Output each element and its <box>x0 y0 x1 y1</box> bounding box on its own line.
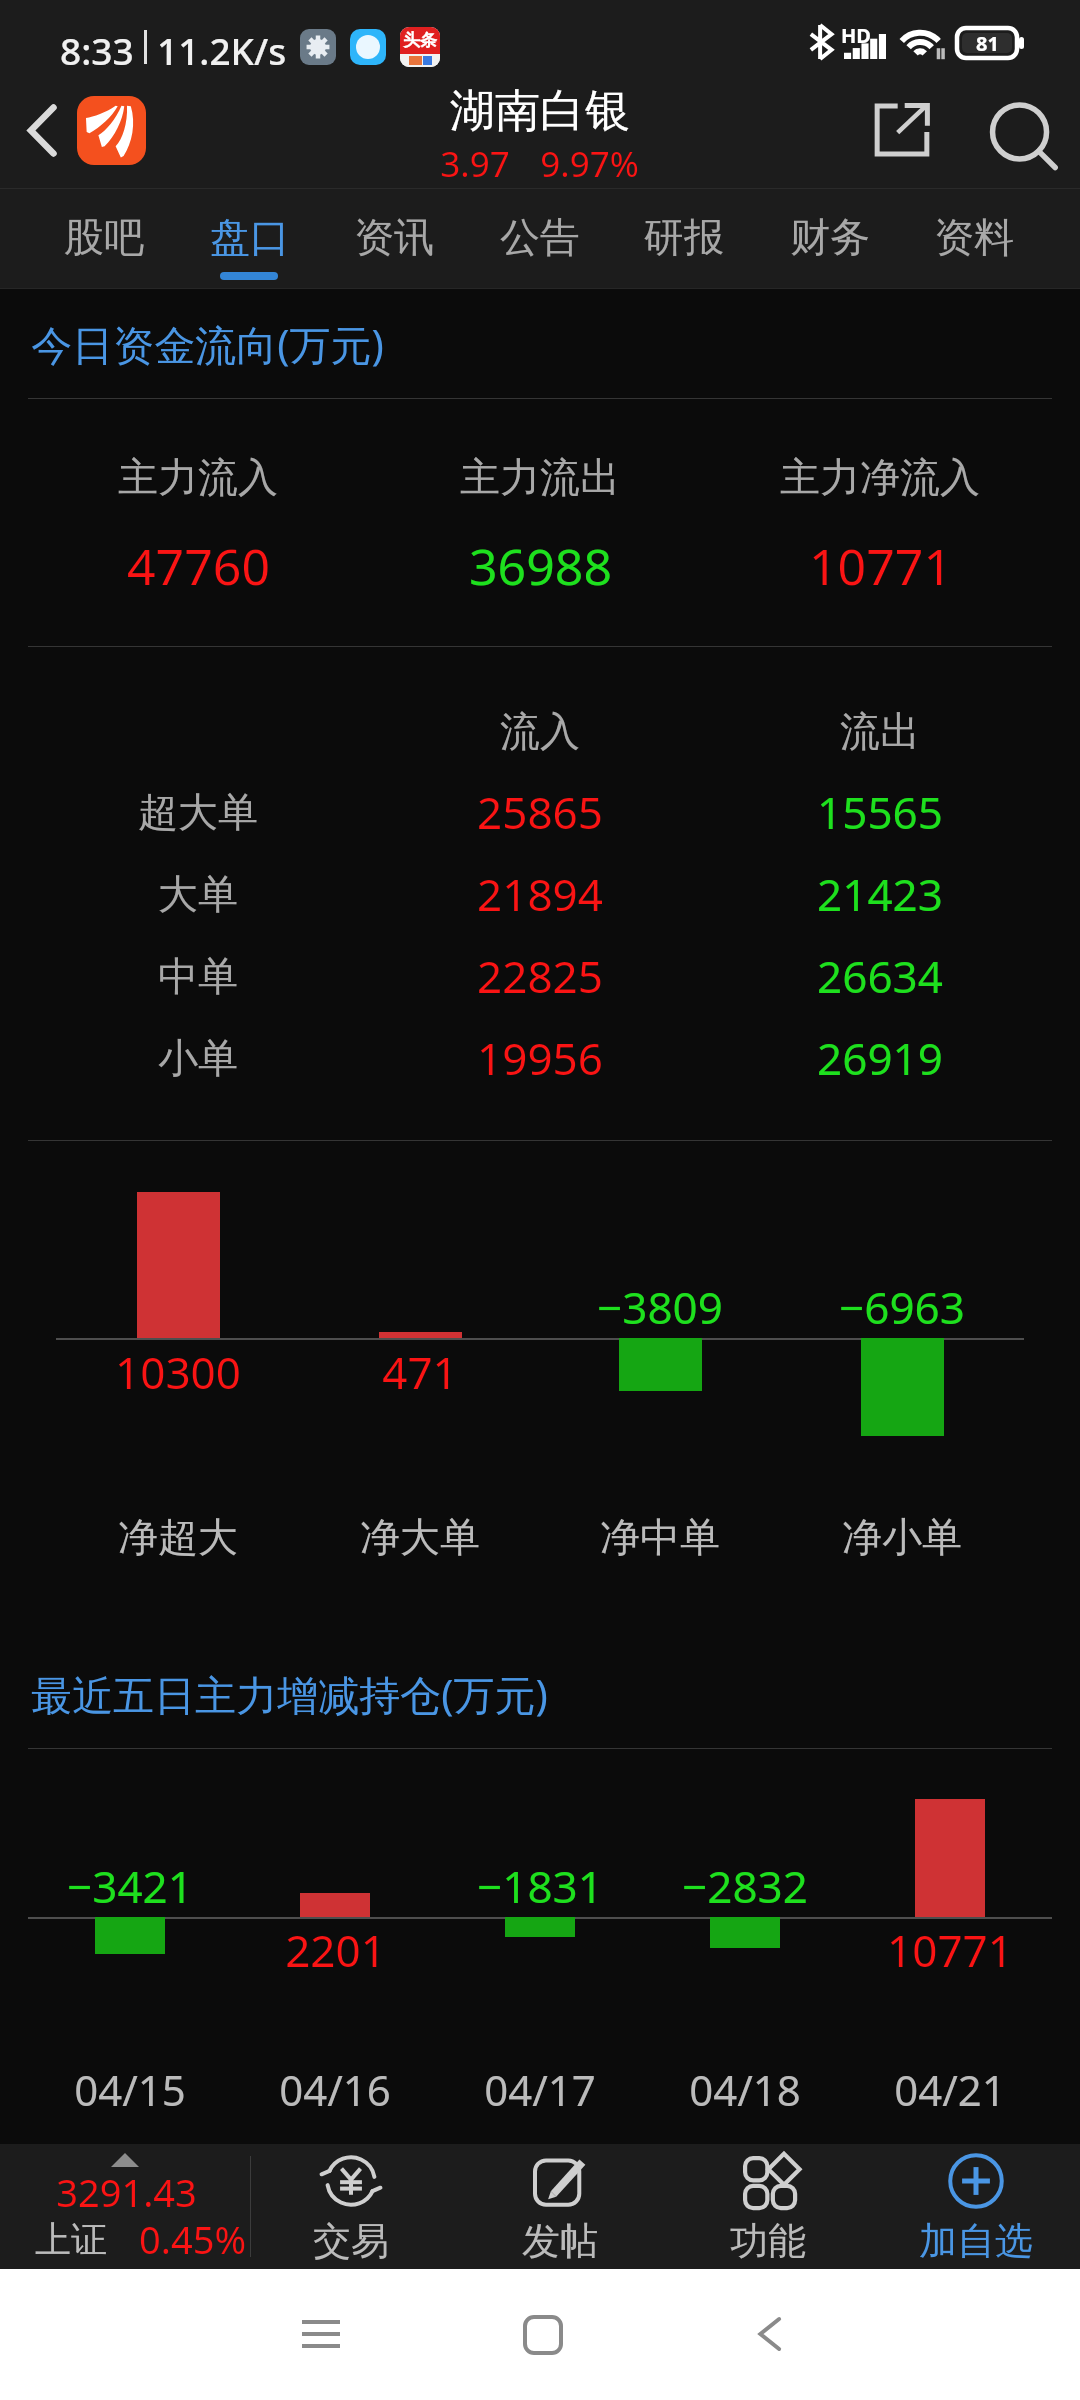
staticText: 36988 <box>469 532 612 600</box>
staticText: 今日资金流向(万元) <box>31 316 384 372</box>
button[interactable]: 财务 <box>760 190 900 286</box>
staticText: 26634 <box>817 946 943 1006</box>
staticText: 中单 <box>158 951 238 1001</box>
button[interactable]: Back <box>730 2294 810 2374</box>
staticText: 04/21 <box>894 2061 1006 2118</box>
button[interactable]: 资讯 <box>324 190 464 286</box>
staticText: −6963 <box>839 1277 965 1337</box>
staticText: 25865 <box>477 782 603 842</box>
button[interactable]: 3291.43 <box>0 2144 250 2269</box>
staticText: 主力流出 <box>460 452 620 502</box>
staticText: 21894 <box>477 864 603 924</box>
staticText: 471 <box>382 1342 458 1402</box>
staticText: 交易 <box>313 2217 389 2265</box>
staticText: HD <box>841 22 871 49</box>
staticText: 19956 <box>477 1028 603 1088</box>
staticText: 流入 <box>500 706 580 756</box>
button[interactable]: 公告 <box>470 190 610 286</box>
button[interactable]: 加自选 <box>872 2144 1080 2269</box>
staticText: −3809 <box>597 1277 723 1337</box>
button[interactable]: 交易 <box>247 2144 455 2269</box>
staticText: 81 <box>976 30 999 57</box>
staticText: 9.97% <box>540 140 639 188</box>
staticText: 净中单 <box>600 1512 720 1562</box>
button[interactable]: 盘口 <box>180 190 320 286</box>
staticText: 资讯 <box>354 212 434 262</box>
staticText: 21423 <box>817 864 943 924</box>
staticText: 超大单 <box>138 787 258 837</box>
button[interactable]: Back <box>2 90 82 170</box>
staticText: 加自选 <box>919 2217 1033 2265</box>
staticText: 资料 <box>934 212 1014 262</box>
staticText: 流出 <box>840 706 920 756</box>
staticText: 04/18 <box>689 2061 801 2118</box>
staticText: 公告 <box>500 212 580 262</box>
staticText: 发帖 <box>522 2217 598 2265</box>
staticText: −2832 <box>682 1856 808 1916</box>
staticText: 22825 <box>477 946 603 1006</box>
staticText: −1831 <box>477 1856 603 1916</box>
staticText: 盘口 <box>210 212 290 262</box>
staticText: 研报 <box>644 212 724 262</box>
staticText: 财务 <box>790 212 870 262</box>
staticText: 最近五日主力增减持仓(万元) <box>31 1666 548 1722</box>
staticText: 15565 <box>817 782 943 842</box>
staticText: 3291.43 <box>56 2166 197 2218</box>
button[interactable]: Search <box>975 87 1055 167</box>
staticText: 净小单 <box>842 1512 962 1562</box>
staticText: 湖南白银 <box>450 83 630 140</box>
staticText: −3421 <box>67 1856 193 1916</box>
staticText: 主力流入 <box>118 452 278 502</box>
staticText: 8:33 <box>60 25 134 69</box>
staticText: 04/16 <box>279 2061 391 2118</box>
button[interactable]: Recent apps <box>281 2294 361 2374</box>
staticText: 小单 <box>158 1033 238 1083</box>
staticText: 10771 <box>887 1920 1013 1980</box>
staticText: 净大单 <box>360 1512 480 1562</box>
staticText: 主力净流入 <box>780 452 980 502</box>
staticText: 04/15 <box>74 2061 186 2118</box>
button[interactable]: 研报 <box>614 190 754 286</box>
staticText: 04/17 <box>484 2061 596 2118</box>
staticText: 股吧 <box>64 212 144 262</box>
button[interactable]: 功能 <box>664 2144 872 2269</box>
staticText: 10300 <box>115 1342 241 1402</box>
button[interactable]: Share <box>862 90 942 170</box>
staticText: 上证 <box>35 2217 107 2262</box>
staticText: 10771 <box>809 532 952 600</box>
staticText: 大单 <box>158 869 238 919</box>
staticText: 47760 <box>127 532 270 600</box>
staticText: 2201 <box>285 1920 386 1980</box>
button[interactable]: 发帖 <box>456 2144 664 2269</box>
staticText: 头条 <box>403 30 437 51</box>
button[interactable]: 股吧 <box>34 190 174 286</box>
button[interactable]: East Money app <box>77 96 146 165</box>
staticText: 功能 <box>730 2217 806 2265</box>
button[interactable]: Home <box>503 2295 583 2375</box>
staticText: 0.45% <box>139 2213 246 2265</box>
staticText: 11.2K/s <box>157 25 287 69</box>
staticText: 3.97 <box>440 140 510 188</box>
button[interactable]: 资料 <box>904 190 1044 286</box>
staticText: 26919 <box>817 1028 943 1088</box>
staticText: 净超大 <box>118 1512 238 1562</box>
